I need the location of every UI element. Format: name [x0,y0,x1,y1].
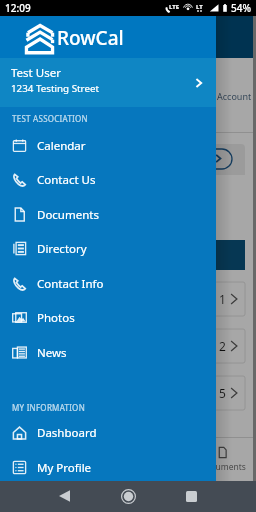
staticText: TEST ASSOCIATION [12,113,88,124]
staticText: Dashboard [37,425,97,441]
staticText: Photos [37,310,75,326]
staticText: Test User [11,65,61,81]
staticText: 5 [219,385,226,401]
staticText: Contact Info [37,276,104,292]
button[interactable]: 5 [188,376,245,410]
button[interactable]: Calendar [0,128,216,163]
staticText: 12:09 [5,1,31,15]
button[interactable]: 1 [188,282,245,316]
button[interactable]: Dashboard [0,415,216,450]
staticText: RowCal [57,25,124,51]
staticText: News [37,345,67,361]
button[interactable]: My Profile [0,450,216,485]
staticText: Calendar [37,138,86,154]
staticText: Directory [37,241,87,257]
button[interactable]: Photos [0,300,216,335]
staticText: 2 [219,338,226,354]
staticText: MY INFORMATION [12,402,85,413]
staticText: Account [217,90,252,102]
button[interactable] [188,240,245,270]
button[interactable]: 2 [188,329,245,363]
button[interactable]: Directory [0,231,216,266]
staticText: 1234 Testing Street [11,82,99,95]
staticText: Documents [37,207,99,223]
button[interactable]: Documents [0,197,216,232]
button[interactable]: Back [49,481,79,511]
button[interactable]: Contact Us [0,162,216,197]
button[interactable]: Test User [0,58,216,107]
staticText: My Profile [37,460,92,476]
button[interactable]: News [0,335,216,370]
button[interactable]: Contact Info [0,266,216,301]
staticText: Contact Us [37,172,96,188]
staticText: 54% [231,1,251,15]
button[interactable]: Recents [176,481,206,511]
staticText: LTE [196,3,206,13]
staticText: 1 [219,291,226,307]
staticText: Documents [200,461,246,473]
staticText: LTE [169,3,180,11]
button[interactable]: Home [113,481,143,511]
